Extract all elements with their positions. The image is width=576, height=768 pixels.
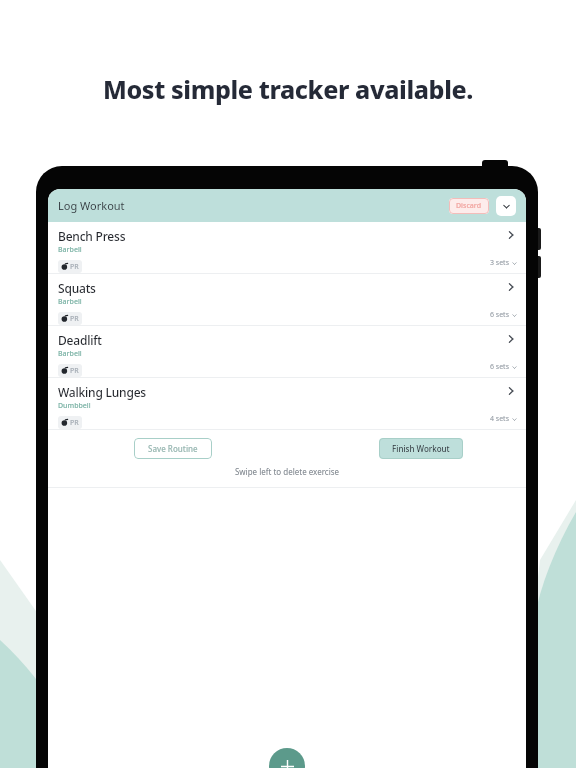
staticText: Log Workout: [58, 198, 125, 213]
staticText: Bench Press: [58, 228, 126, 244]
staticText: PR: [70, 262, 79, 271]
staticText: Walking Lunges: [58, 384, 147, 400]
button[interactable]: Add exercise: [269, 748, 305, 768]
staticText: Swipe left to delete exercise: [48, 466, 526, 477]
button[interactable]: Discard: [449, 198, 489, 214]
staticText: Most simple tracker available.: [0, 72, 576, 106]
staticText: 6 sets: [490, 362, 510, 372]
staticText: Barbell: [58, 245, 82, 255]
staticText: Deadlift: [58, 332, 102, 348]
staticText: PR: [70, 314, 79, 323]
staticText: Barbell: [58, 297, 82, 307]
staticText: Finish Workout: [392, 443, 450, 454]
staticText: PR: [70, 366, 79, 375]
staticText: 3 sets: [490, 258, 510, 268]
button[interactable]: Bench Press: [48, 222, 526, 273]
button[interactable]: Collapse: [496, 196, 516, 216]
button[interactable]: Deadlift: [48, 326, 526, 377]
staticText: 4 sets: [490, 414, 510, 424]
button[interactable]: 3 sets: [490, 258, 517, 268]
staticText: Save Routine: [148, 443, 198, 454]
staticText: PR: [70, 418, 79, 427]
button[interactable]: Squats: [48, 274, 526, 325]
staticText: Barbell: [58, 349, 82, 359]
staticText: Squats: [58, 280, 96, 296]
button[interactable]: Finish Workout: [379, 438, 463, 459]
button[interactable]: Save Routine: [134, 438, 212, 459]
button[interactable]: 4 sets: [490, 414, 517, 424]
button[interactable]: 6 sets: [490, 362, 517, 372]
staticText: Discard: [456, 201, 482, 211]
staticText: 6 sets: [490, 310, 510, 320]
staticText: Dumbbell: [58, 401, 91, 411]
button[interactable]: Walking Lunges: [48, 378, 526, 429]
button[interactable]: 6 sets: [490, 310, 517, 320]
